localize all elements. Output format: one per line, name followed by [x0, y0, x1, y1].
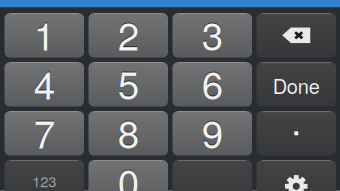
- button[interactable]: 4: [4, 62, 84, 106]
- button[interactable]: 5: [88, 62, 168, 106]
- button[interactable]: 123: [4, 160, 84, 191]
- staticText: Done: [273, 71, 320, 100]
- staticText: 7: [34, 103, 55, 158]
- staticText: 3: [202, 6, 223, 61]
- staticText: 6: [202, 55, 223, 110]
- staticText: 123: [32, 170, 56, 191]
- staticText: 2: [118, 6, 139, 61]
- staticText: 3: [202, 5, 223, 60]
- staticText: 4: [34, 55, 55, 110]
- staticText: 0: [118, 153, 139, 191]
- button[interactable]: 6: [172, 62, 252, 106]
- button[interactable]: Blank: [172, 160, 252, 191]
- button[interactable]: Settings: [256, 160, 336, 191]
- staticText: 7: [34, 104, 55, 159]
- button[interactable]: 1: [4, 13, 84, 58]
- staticText: 9: [202, 103, 223, 158]
- button[interactable]: 2: [88, 13, 168, 58]
- button[interactable]: Decimal point: [256, 111, 336, 155]
- button[interactable]: 3: [172, 13, 252, 58]
- staticText: 6: [202, 54, 223, 109]
- button[interactable]: Done: [256, 62, 336, 106]
- staticText: 1: [34, 5, 55, 60]
- staticText: 2: [118, 5, 139, 60]
- staticText: 1: [34, 6, 55, 61]
- staticText: 0: [118, 152, 139, 191]
- button[interactable]: 9: [172, 111, 252, 155]
- staticText: 8: [118, 103, 139, 158]
- staticText: 5: [118, 54, 139, 109]
- staticText: 4: [34, 54, 55, 109]
- button[interactable]: 0: [88, 160, 168, 191]
- button[interactable]: Delete: [256, 13, 336, 58]
- staticText: 5: [118, 55, 139, 110]
- staticText: 9: [202, 104, 223, 159]
- button[interactable]: 8: [88, 111, 168, 155]
- button[interactable]: 7: [4, 111, 84, 155]
- staticText: 8: [118, 104, 139, 159]
